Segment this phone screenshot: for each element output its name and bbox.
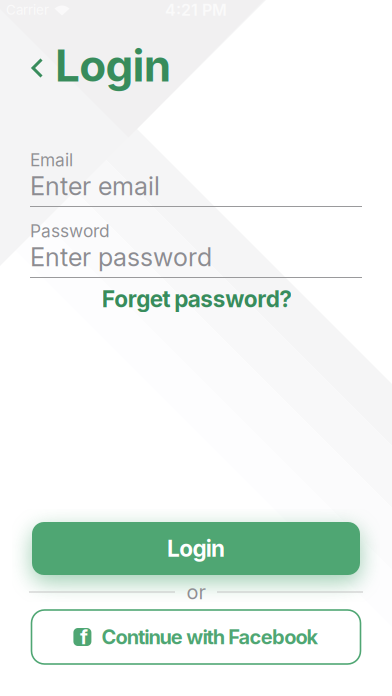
staticText: Login: [55, 39, 171, 91]
staticText: f: [80, 625, 88, 649]
staticText: Enter password: [30, 242, 212, 272]
staticText: Login: [167, 535, 225, 562]
button[interactable]: Email: [0, 171, 392, 201]
button[interactable]: Password: [0, 242, 392, 272]
button[interactable]: Back: [30, 39, 171, 91]
button[interactable]: Forget password?: [102, 286, 292, 312]
staticText: Continue with Facebook: [101, 625, 319, 649]
staticText: Email: [30, 150, 73, 170]
button[interactable]: Login: [32, 522, 360, 575]
staticText: Forget password?: [102, 286, 292, 312]
staticText: or: [186, 580, 205, 604]
staticText: Password: [30, 221, 110, 241]
staticText: 4:21 PM: [165, 1, 227, 19]
button[interactable]: f: [31, 610, 360, 664]
staticText: Enter email: [30, 171, 160, 201]
